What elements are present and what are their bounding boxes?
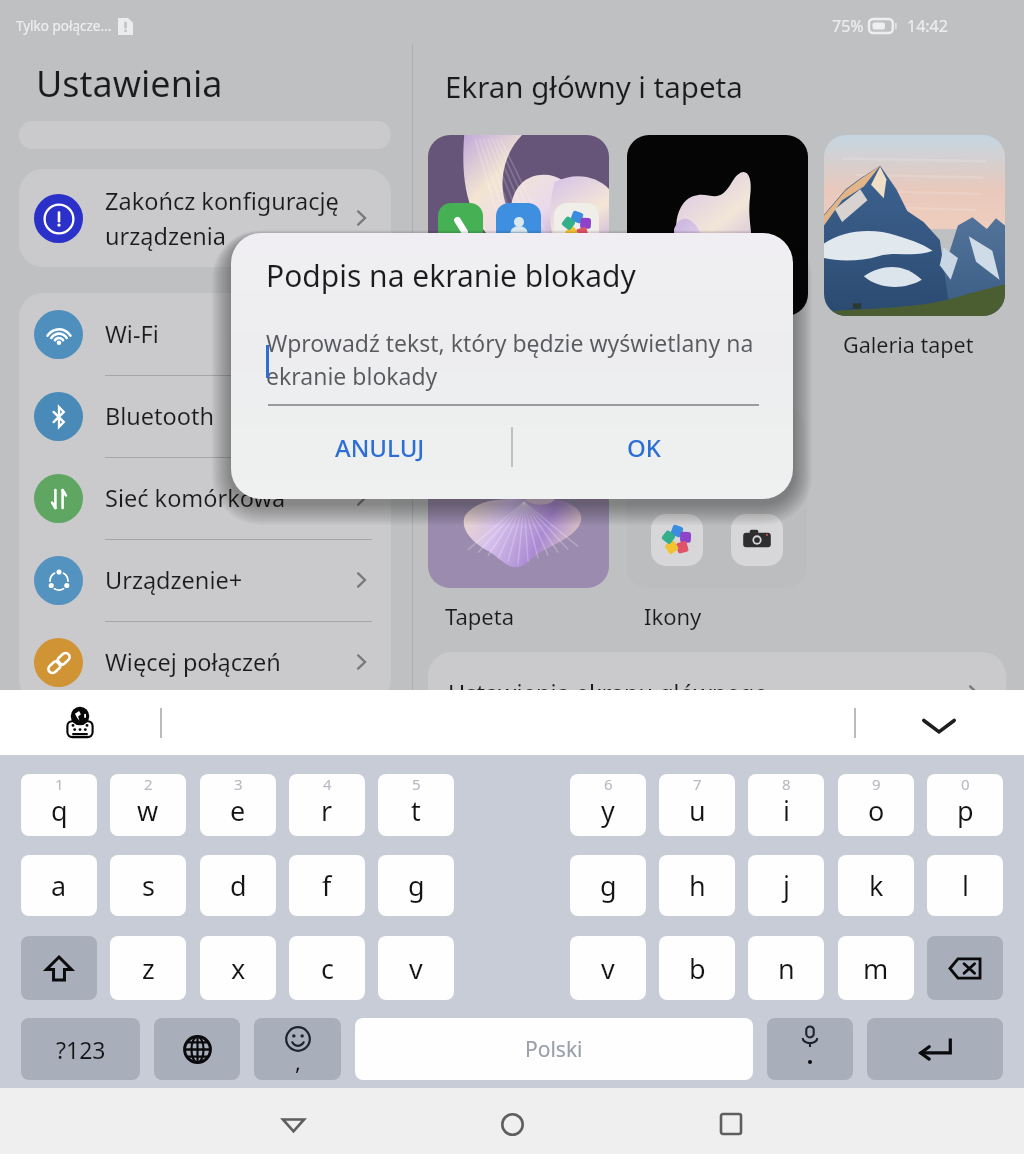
button[interactable]: Sieć komórkowa bbox=[19, 457, 391, 539]
button[interactable]: 7 bbox=[659, 774, 735, 836]
staticText: y bbox=[601, 792, 615, 829]
button[interactable]: 6 bbox=[570, 774, 646, 836]
button[interactable]: c bbox=[289, 936, 365, 1000]
button[interactable]: m bbox=[838, 936, 914, 1000]
staticText: Sieć komórkowa bbox=[105, 482, 286, 514]
button[interactable]: Hide keyboard bbox=[914, 700, 964, 750]
button[interactable]: Back bbox=[265, 1096, 321, 1152]
staticText: 75% bbox=[832, 15, 864, 37]
button[interactable]: Ustawienia ekranu głównego bbox=[428, 652, 1006, 734]
button[interactable]: 9 bbox=[838, 774, 914, 836]
button[interactable]: 1 bbox=[21, 774, 97, 836]
button[interactable]: d bbox=[200, 855, 276, 916]
button[interactable]: x bbox=[200, 936, 276, 1000]
button[interactable]: Shift bbox=[21, 936, 97, 1000]
button[interactable]: g bbox=[570, 855, 646, 916]
button[interactable]: n bbox=[748, 936, 824, 1000]
staticText: ANULUJ bbox=[335, 431, 425, 464]
button[interactable]: l bbox=[927, 855, 1003, 916]
staticText: OK bbox=[627, 431, 661, 464]
button[interactable] bbox=[824, 135, 1005, 316]
staticText: 14:42 bbox=[907, 15, 948, 37]
staticText: p bbox=[957, 792, 974, 829]
button[interactable]: k bbox=[838, 855, 914, 916]
button[interactable]: Backspace bbox=[927, 936, 1003, 1000]
staticText: , bbox=[295, 1046, 301, 1076]
staticText: q bbox=[51, 792, 68, 829]
button[interactable]: Change input language bbox=[58, 701, 102, 745]
staticText: Tapeta bbox=[445, 601, 515, 631]
staticText: x bbox=[231, 950, 246, 987]
staticText: Ekran główny i tapeta bbox=[445, 66, 743, 106]
button[interactable]: 2 bbox=[110, 774, 186, 836]
staticText: g bbox=[408, 867, 425, 904]
button[interactable]: s bbox=[110, 855, 186, 916]
button[interactable]: Recent apps bbox=[703, 1096, 759, 1152]
button[interactable]: ANULUJ bbox=[231, 419, 511, 499]
button[interactable] bbox=[626, 407, 807, 588]
button[interactable]: 8 bbox=[748, 774, 824, 836]
button[interactable]: 5 bbox=[378, 774, 454, 836]
staticText: Ustawienia bbox=[36, 59, 223, 108]
button[interactable]: g bbox=[378, 855, 454, 916]
staticText: Zakończ konfigurację urządzenia bbox=[105, 185, 339, 252]
staticText: 9 bbox=[872, 774, 881, 794]
staticText: 5 bbox=[412, 774, 421, 794]
button[interactable]: Emoji bbox=[254, 1018, 341, 1080]
button[interactable]: Urządzenie+ bbox=[19, 539, 391, 621]
staticText: 4 bbox=[323, 774, 332, 794]
button[interactable] bbox=[428, 407, 609, 588]
button[interactable]: Bluetooth bbox=[19, 375, 391, 457]
button[interactable]: Enter bbox=[867, 1018, 1003, 1080]
staticText: a bbox=[51, 867, 67, 904]
staticText: Urządzenie+ bbox=[105, 564, 243, 596]
staticText: c bbox=[321, 950, 334, 987]
staticText: Wprowadź tekst, który będzie wyświetlany… bbox=[266, 327, 754, 392]
button[interactable]: h bbox=[659, 855, 735, 916]
button[interactable]: Polski bbox=[355, 1018, 753, 1080]
staticText: t bbox=[411, 792, 421, 829]
staticText: Bluetooth bbox=[105, 400, 215, 432]
staticText: Ikony bbox=[644, 601, 702, 631]
staticText: v bbox=[601, 950, 615, 987]
button[interactable]: Switch language bbox=[154, 1018, 240, 1080]
staticText: b bbox=[689, 950, 706, 987]
button[interactable]: v bbox=[570, 936, 646, 1000]
button[interactable]: 3 bbox=[200, 774, 276, 836]
button[interactable] bbox=[428, 135, 609, 316]
button[interactable]: Więcej połączeń bbox=[19, 621, 391, 703]
button[interactable]: Home bbox=[484, 1096, 540, 1152]
staticText: 2 bbox=[144, 774, 153, 794]
staticText: j bbox=[783, 867, 790, 904]
button[interactable]: v bbox=[378, 936, 454, 1000]
staticText: 6 bbox=[604, 774, 613, 794]
staticText: Podpis na ekranie blokady bbox=[266, 255, 636, 296]
staticText: 7 bbox=[693, 774, 702, 794]
button[interactable]: Zakończ konfigurację urządzenia bbox=[19, 169, 391, 267]
button[interactable]: j bbox=[748, 855, 824, 916]
staticText: u bbox=[689, 792, 706, 829]
staticText: r bbox=[321, 792, 333, 829]
button[interactable]: OK bbox=[513, 419, 793, 499]
staticText: 1 bbox=[55, 774, 64, 794]
button[interactable] bbox=[627, 135, 808, 316]
staticText: z bbox=[142, 950, 155, 987]
staticText: h bbox=[689, 867, 706, 904]
staticText: 8 bbox=[782, 774, 791, 794]
button[interactable]: Voice input bbox=[767, 1018, 853, 1080]
staticText: m bbox=[863, 950, 889, 987]
button[interactable]: 0 bbox=[927, 774, 1003, 836]
staticText: ?123 bbox=[56, 1034, 106, 1065]
button[interactable]: Wi-Fi bbox=[19, 293, 391, 375]
button[interactable]: z bbox=[110, 936, 186, 1000]
staticText: d bbox=[230, 867, 247, 904]
staticText: g bbox=[600, 867, 617, 904]
button[interactable]: 4 bbox=[289, 774, 365, 836]
button[interactable]: b bbox=[659, 936, 735, 1000]
staticText: 3 bbox=[234, 774, 243, 794]
button[interactable]: ?123 bbox=[21, 1018, 140, 1080]
button[interactable]: f bbox=[289, 855, 365, 916]
staticText: k bbox=[869, 867, 884, 904]
staticText: w bbox=[137, 792, 159, 829]
button[interactable]: a bbox=[21, 855, 97, 916]
